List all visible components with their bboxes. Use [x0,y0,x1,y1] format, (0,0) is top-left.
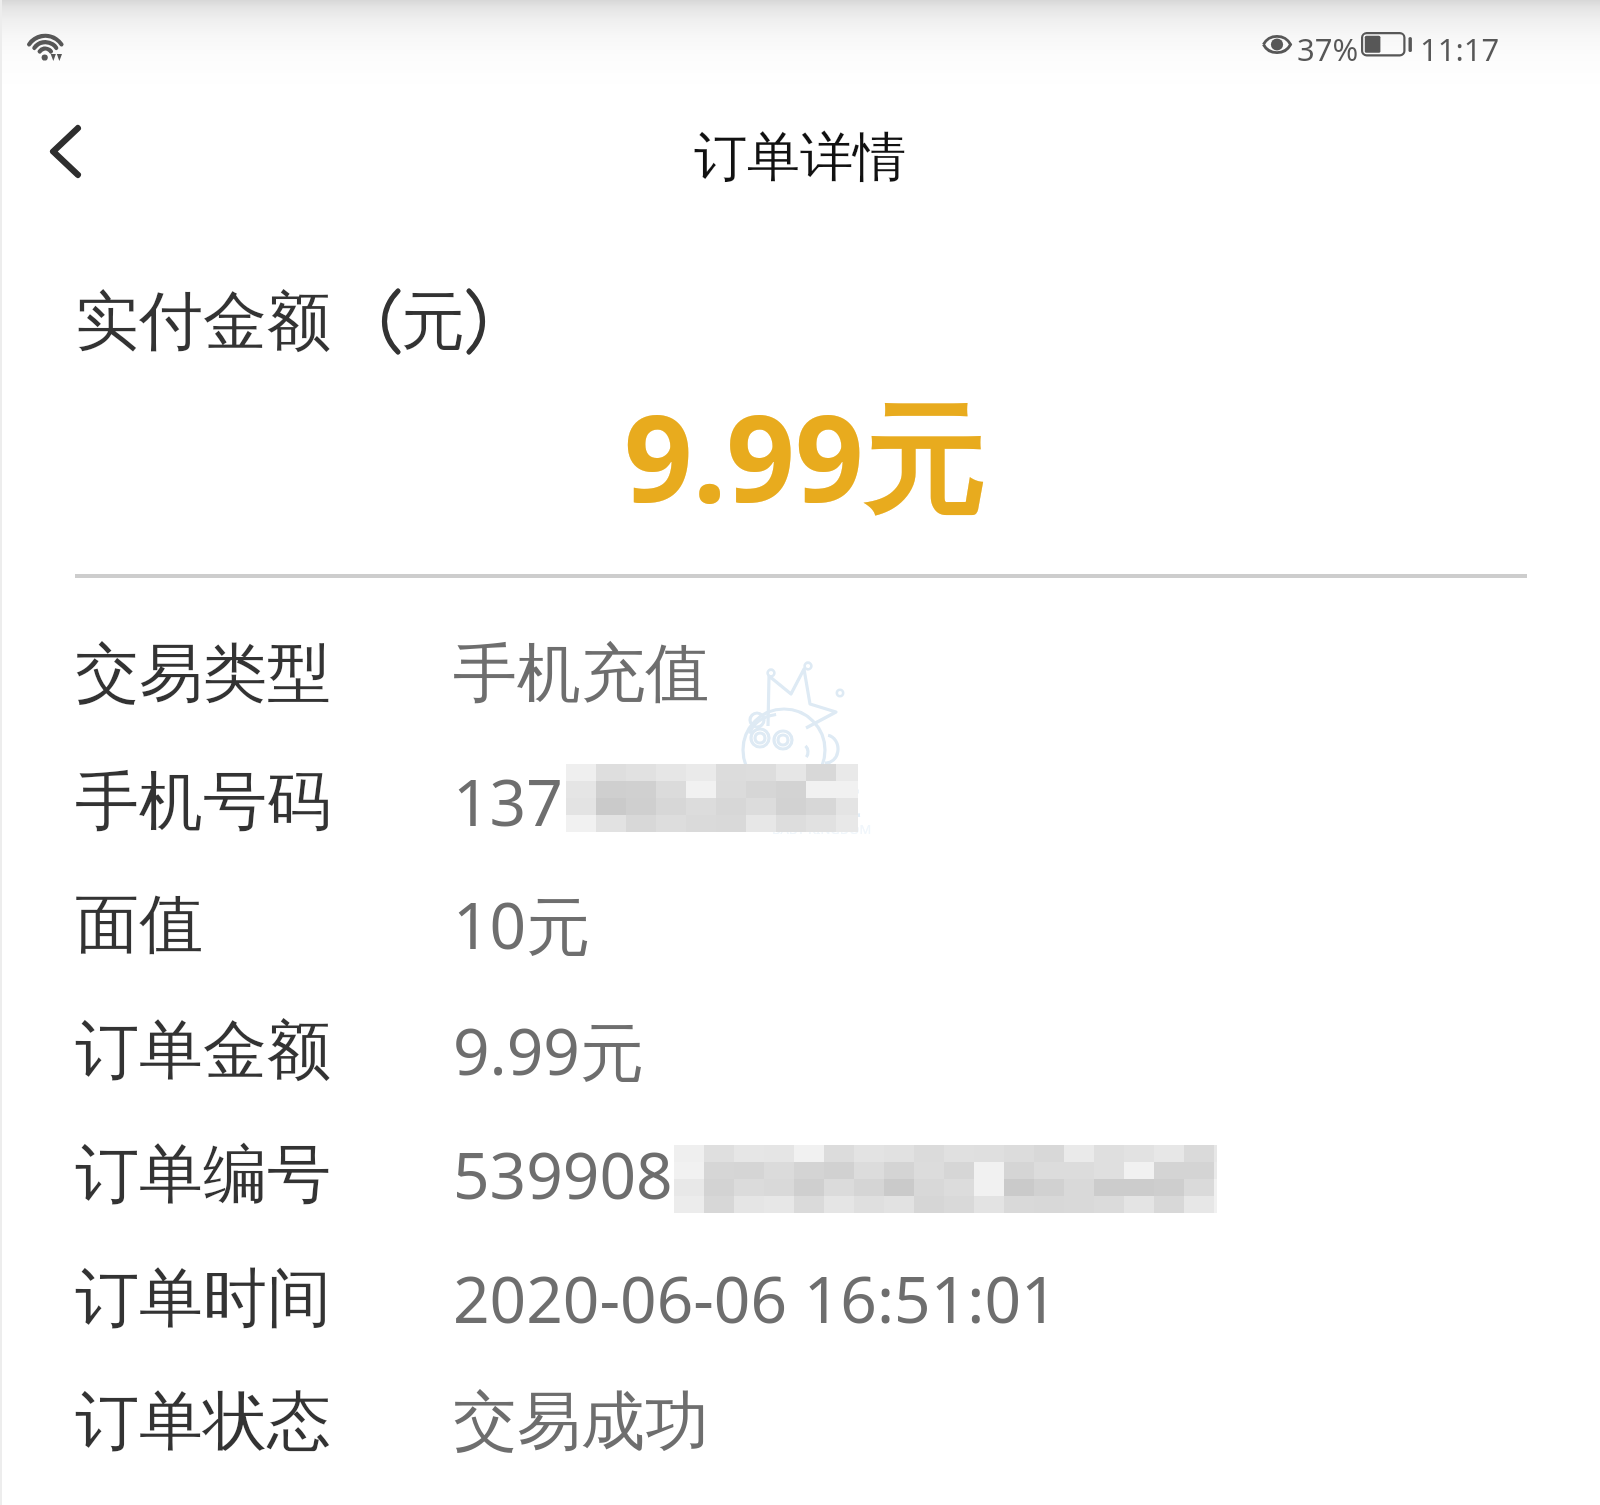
staticText: 订单详情 [694,124,906,191]
staticText: 11:17 [1420,28,1500,70]
button[interactable]: 面值 [0,862,1600,986]
button[interactable]: 手机号码 [0,739,1600,863]
staticText: 37% [1297,28,1359,70]
staticText: 订单编号 [75,1134,331,1215]
staticText: 10元 [453,881,591,968]
staticText: 2020-06-06 16:51:01 [453,1255,1058,1342]
staticText: 童子王 [767,785,860,824]
staticText: 面值 [75,884,203,965]
staticText: 实付金额 [75,281,331,362]
staticText: BABY KINGDOM [772,820,872,838]
staticText: 订单金额 [75,1010,331,1091]
staticText: 手机号码 [75,761,331,842]
button[interactable]: 交易类型 [0,611,1600,735]
button[interactable]: Back [11,97,119,205]
staticText: 539908 [453,1131,673,1218]
staticText: 交易成功 [453,1381,709,1462]
staticText: 交易类型 [75,633,331,714]
staticText: 9.99元 [453,1007,644,1094]
staticText: 元 [401,281,465,362]
staticText: 137 [453,758,563,845]
button[interactable]: 订单编号 [0,1112,1600,1236]
button[interactable]: 订单时间 [0,1236,1600,1360]
staticText: 订单状态 [75,1381,331,1462]
button[interactable]: 订单状态 [0,1359,1600,1483]
staticText: 9.99元 [624,374,984,538]
staticText: 订单时间 [75,1258,331,1339]
staticText: 手机充值 [453,633,709,714]
button[interactable]: 订单金额 [0,988,1600,1112]
